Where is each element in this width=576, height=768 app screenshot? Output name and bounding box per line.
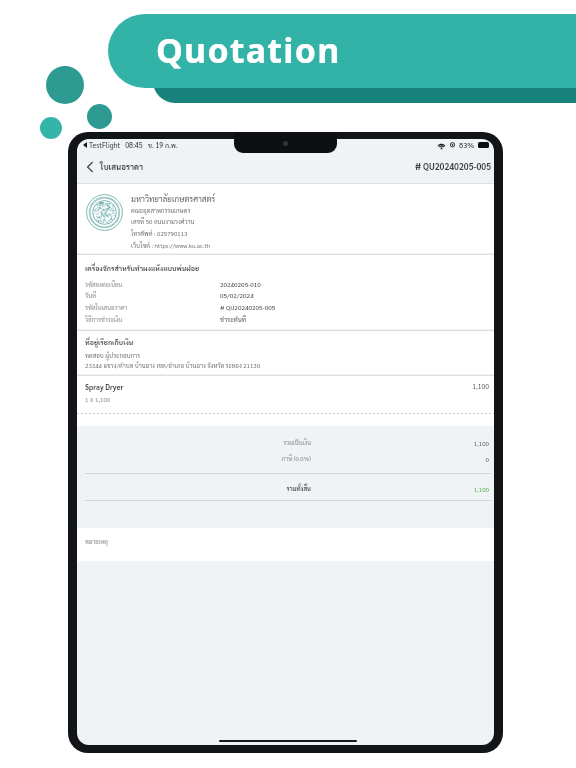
staticText: รหัสใบเสนอราคา [85,303,128,311]
staticText: เลขที่ 50 ถนนงามวงศ์วาน [131,217,195,225]
staticText: 20240205-010 [220,280,261,288]
staticText: วันที่ [85,291,97,299]
staticText: ทดสอบ ผู้ประกอบการ [85,351,140,359]
staticText: # QU20240205-005 [220,303,276,311]
staticText: # QU20240205-005 [380,161,491,172]
staticText: 83% [459,140,475,150]
staticText: Quotation [156,27,341,73]
staticText: รวมเป็นเงิน [220,439,311,447]
staticText: 05/02/2024 [220,291,254,299]
staticText: 1,100 [409,485,489,493]
staticText: ชำระทันที [220,315,247,323]
staticText: รวมทั้งสิ้น [220,485,311,493]
staticText: ที่อยู่เรียกเก็บเงิน [85,338,134,347]
staticText: รหัสลงทะเบียน [85,280,123,288]
staticText: 0 [409,455,489,463]
staticText: 1,100 [409,382,489,391]
staticText: โทรศัพท์ : 025790113 [131,229,188,237]
staticText: มหาวิทยาลัยเกษตรศาสตร์ [131,193,216,203]
staticText: หมายเหตุ [85,538,108,546]
staticText: เว็บไซต์ : https://www.ku.ac.th [131,241,211,249]
staticText: เครื่องจักรสำหรับทำผงแห้งแบบพ่นฝอย [85,264,200,273]
staticText: คณะอุตสาหกรรมเกษตร [131,206,191,214]
staticText: ใบเสนอราคา [100,161,144,171]
staticText: 1 X 1,100 [85,395,111,403]
staticText: 1,100 [409,439,489,447]
staticText: TestFlight 08:45 ข. 19 ก.พ. [89,141,178,150]
staticText: Spray Dryer [85,382,124,391]
staticText: 23344 แขวง/ตำบล บ้านฉาง เขต/อำเภอ บ้านฉา… [85,361,261,369]
staticText: วิธีการชำระเงิน [85,315,123,323]
button[interactable]: Back [82,159,98,175]
staticText: ภาษี (0.0%) [220,455,311,463]
